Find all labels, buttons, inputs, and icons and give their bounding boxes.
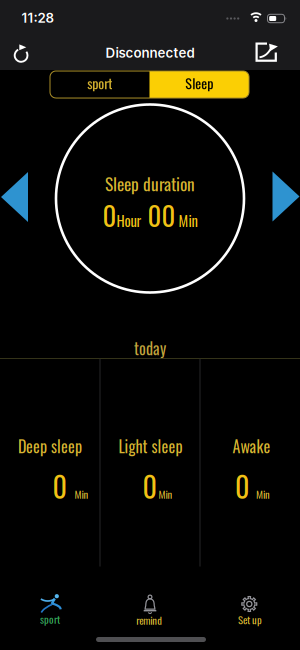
staticText: Min: [256, 486, 270, 502]
staticText: Awake: [232, 434, 270, 458]
button[interactable]: Next: [272, 171, 300, 221]
staticText: Sleep duration: [105, 171, 195, 196]
button[interactable]: Set up: [205, 581, 295, 633]
staticText: 11:28: [21, 10, 54, 26]
staticText: sport: [40, 611, 60, 627]
staticText: 00: [141, 195, 175, 235]
staticText: Min: [74, 486, 88, 502]
button[interactable]: sport: [50, 71, 149, 98]
staticText: Hour: [116, 210, 141, 231]
button[interactable]: Sleep: [149, 71, 249, 98]
staticText: 0: [52, 465, 66, 507]
staticText: 0: [142, 465, 156, 507]
button[interactable]: remind: [105, 581, 195, 633]
staticText: Set up: [238, 612, 262, 627]
staticText: Deep sleep: [18, 434, 82, 458]
staticText: Min: [175, 210, 197, 231]
staticText: remind: [136, 612, 162, 628]
staticText: Disconnected: [105, 45, 194, 61]
staticText: Min: [158, 486, 172, 502]
staticText: 0: [102, 195, 116, 235]
button[interactable]: Previous: [0, 172, 28, 222]
button[interactable]: Share: [254, 41, 278, 62]
staticText: sport: [87, 73, 112, 93]
staticText: 0: [235, 465, 249, 507]
staticText: Sleep: [185, 73, 213, 93]
staticText: Light sleep: [118, 434, 182, 458]
button[interactable]: Refresh: [8, 41, 34, 68]
button[interactable]: sport: [5, 581, 95, 633]
staticText: today: [134, 336, 166, 360]
